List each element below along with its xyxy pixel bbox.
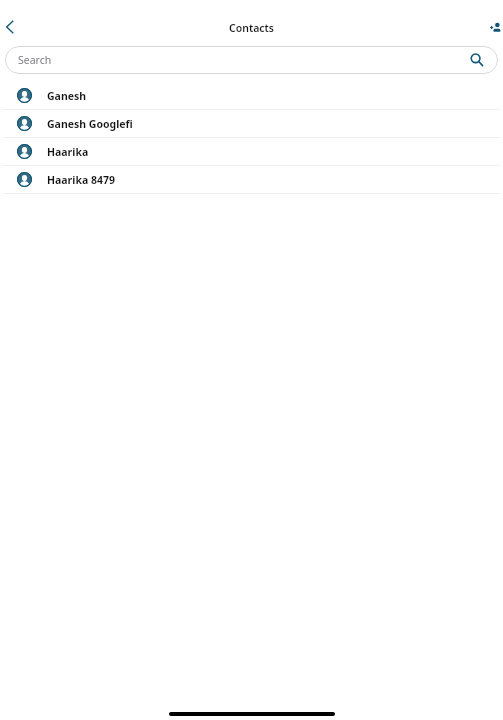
staticText: Haarika	[47, 145, 89, 159]
button[interactable]: Haarika	[0, 138, 503, 166]
staticText: Ganesh	[47, 89, 87, 103]
staticText: Contacts	[229, 21, 274, 35]
staticText: Haarika 8479	[47, 173, 115, 187]
button[interactable]: Ganesh Googlefi	[0, 110, 503, 138]
button[interactable]: Haarika 8479	[0, 166, 503, 194]
staticText: Ganesh Googlefi	[47, 117, 133, 131]
button[interactable]: Back	[1, 18, 19, 36]
staticText: Search	[18, 53, 52, 67]
button[interactable]: Ganesh	[0, 82, 503, 110]
button[interactable]: Search	[5, 46, 498, 74]
button[interactable]: Add contact	[490, 22, 502, 34]
